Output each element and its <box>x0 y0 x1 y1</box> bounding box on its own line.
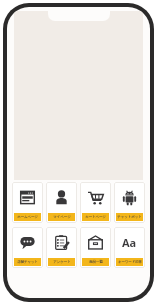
staticText: アンケート <box>53 260 71 264</box>
staticText: マイページ <box>53 215 71 219</box>
staticText: ホームページ <box>17 215 38 219</box>
button[interactable]: 商品一覧 <box>80 227 111 268</box>
staticText: Aa <box>122 235 137 250</box>
button[interactable]: ホームページ <box>12 182 43 223</box>
staticText: カートページ <box>85 215 106 219</box>
button[interactable]: カートページ <box>80 182 111 223</box>
button[interactable]: チャットボット <box>114 182 145 223</box>
staticText: 商品一覧 <box>89 260 103 264</box>
staticText: チャットボット <box>117 215 142 219</box>
button[interactable]: アンケート <box>46 227 77 268</box>
staticText: 店舗チャット <box>17 260 38 264</box>
staticText: キーワード応答 <box>118 260 142 264</box>
button[interactable]: 店舗チャット <box>12 227 43 268</box>
button[interactable]: マイページ <box>46 182 77 223</box>
button[interactable]: キーワード応答 <box>114 227 145 268</box>
